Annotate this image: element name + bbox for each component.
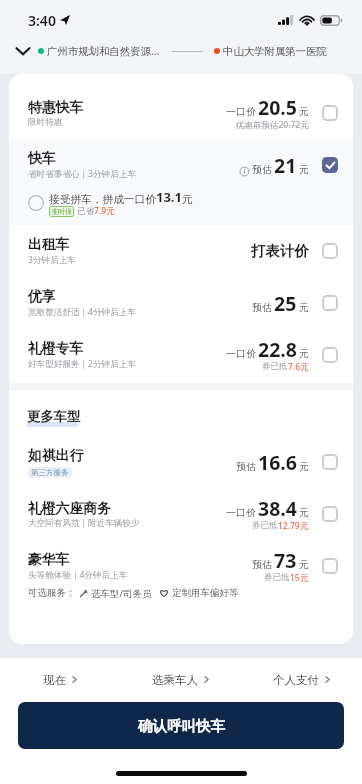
- button[interactable]: 现在: [0, 661, 120, 698]
- staticText: 大空间有风范｜附近车辆较少: [28, 518, 140, 529]
- staticText: 20.5: [258, 94, 297, 121]
- staticText: 预估: [252, 301, 272, 314]
- staticText: 如祺出行: [28, 447, 84, 464]
- button[interactable]: 如祺出行: [9, 436, 353, 488]
- staticText: 个人支付: [273, 673, 319, 687]
- staticText: 优享: [28, 288, 56, 305]
- staticText: 73: [274, 547, 297, 574]
- staticText: 优惠前预估20.72元: [236, 119, 309, 131]
- staticText: 更多车型: [27, 408, 81, 425]
- staticText: 元: [299, 163, 309, 176]
- button[interactable]: 个人支付: [241, 661, 362, 698]
- staticText: 3:40: [28, 11, 56, 30]
- staticText: 券已抵: [264, 572, 290, 583]
- staticText: 礼橙专车: [28, 340, 84, 357]
- staticText: 省时省事省心｜3分钟后上车: [28, 168, 136, 180]
- staticText: 定制用车偏好等: [172, 587, 239, 599]
- button[interactable]: 选乘车人: [120, 661, 241, 698]
- staticText: 限时特惠: [28, 117, 63, 128]
- staticText: 特惠快车: [28, 99, 84, 116]
- button[interactable]: 可选服务：: [28, 581, 353, 605]
- staticText: 快车: [28, 150, 56, 167]
- staticText: 打表计价: [251, 242, 309, 260]
- staticText: 接受拼车，拼成一口价: [49, 193, 156, 206]
- staticText: 3分钟后上车: [28, 254, 76, 266]
- staticText: 元: [299, 347, 309, 360]
- staticText: 宽敞整洁舒适｜4分钟后上车: [28, 306, 136, 318]
- button[interactable]: 豪华车: [9, 540, 353, 592]
- staticText: 一口价: [226, 347, 256, 360]
- staticText: 一口价: [226, 506, 256, 519]
- button[interactable]: 礼橙专车: [9, 329, 353, 381]
- staticText: 22.8: [258, 336, 297, 363]
- other: Expand route: [16, 46, 30, 56]
- staticText: 元: [299, 105, 309, 118]
- staticText: 中山大学附属第一医院: [223, 45, 327, 58]
- button[interactable]: Expand route: [16, 34, 350, 68]
- staticText: 7.6元: [288, 361, 309, 373]
- staticText: 券已抵: [252, 520, 278, 531]
- button[interactable]: 接受拼车，拼成一口价: [28, 188, 353, 218]
- staticText: 15元: [290, 572, 309, 584]
- staticText: 准时保: [51, 207, 72, 216]
- staticText: 可选服务：: [28, 587, 76, 599]
- staticText: 豪华车: [28, 551, 70, 568]
- staticText: 预估: [236, 460, 256, 473]
- staticText: 第三方服务: [31, 468, 69, 477]
- staticText: 25: [274, 290, 297, 317]
- staticText: 广州市规划和自然资源...: [47, 44, 160, 58]
- button[interactable]: 优享: [9, 277, 353, 329]
- staticText: 一口价: [226, 105, 256, 118]
- staticText: 元: [299, 301, 309, 314]
- staticText: 头等舱体验｜4分钟后上车: [28, 569, 128, 581]
- staticText: 38.4: [258, 495, 297, 522]
- staticText: 已省: [77, 206, 94, 217]
- staticText: 确认呼叫快车: [138, 717, 225, 735]
- staticText: 选乘车人: [152, 673, 198, 687]
- button[interactable]: 礼橙六座商务: [9, 488, 353, 540]
- staticText: 出租车: [28, 236, 70, 253]
- button[interactable]: 快车: [9, 139, 353, 225]
- staticText: 券已抵: [262, 361, 288, 372]
- staticText: 21: [274, 152, 297, 179]
- staticText: 13.1: [156, 188, 182, 206]
- button[interactable]: 确认呼叫快车: [18, 702, 344, 749]
- staticText: 12.79元: [278, 520, 309, 532]
- staticText: 礼橙六座商务: [28, 500, 111, 517]
- staticText: 元: [299, 558, 309, 571]
- staticText: 现在: [43, 673, 66, 687]
- staticText: 元: [299, 460, 309, 473]
- staticText: 预估: [252, 163, 272, 176]
- staticText: 16.6: [258, 449, 297, 476]
- button[interactable]: 特惠快车: [9, 87, 353, 139]
- staticText: 元: [182, 193, 193, 206]
- button[interactable]: 出租车: [9, 225, 353, 277]
- staticText: 元: [299, 506, 309, 519]
- staticText: 预估: [252, 558, 272, 571]
- staticText: 好车型好服务｜2分钟后上车: [28, 358, 136, 370]
- staticText: 选车型/司务员: [91, 587, 152, 600]
- staticText: 7.9元: [94, 205, 115, 217]
